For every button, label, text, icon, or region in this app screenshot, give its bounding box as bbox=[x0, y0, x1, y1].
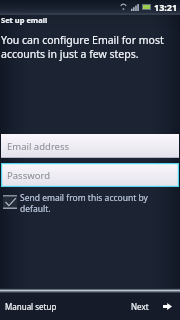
staticText: 13:21 bbox=[154, 1, 178, 13]
button[interactable]: Send email from this account by default. bbox=[0, 191, 180, 215]
staticText: Password bbox=[7, 169, 50, 182]
staticText: Manual setup bbox=[5, 301, 57, 312]
staticText: You can configure Email for most account… bbox=[1, 33, 164, 61]
button[interactable]: Manual setup bbox=[0, 293, 88, 320]
staticText: Email address bbox=[7, 140, 70, 153]
staticText: Set up email bbox=[1, 15, 48, 25]
button[interactable]: Next bbox=[113, 293, 180, 320]
button[interactable]: Email address bbox=[1, 134, 179, 158]
other: Next bbox=[163, 303, 172, 310]
staticText: Send email from this account by default. bbox=[20, 192, 148, 214]
button[interactable]: Password bbox=[1, 163, 179, 187]
staticText: Next bbox=[131, 301, 149, 312]
